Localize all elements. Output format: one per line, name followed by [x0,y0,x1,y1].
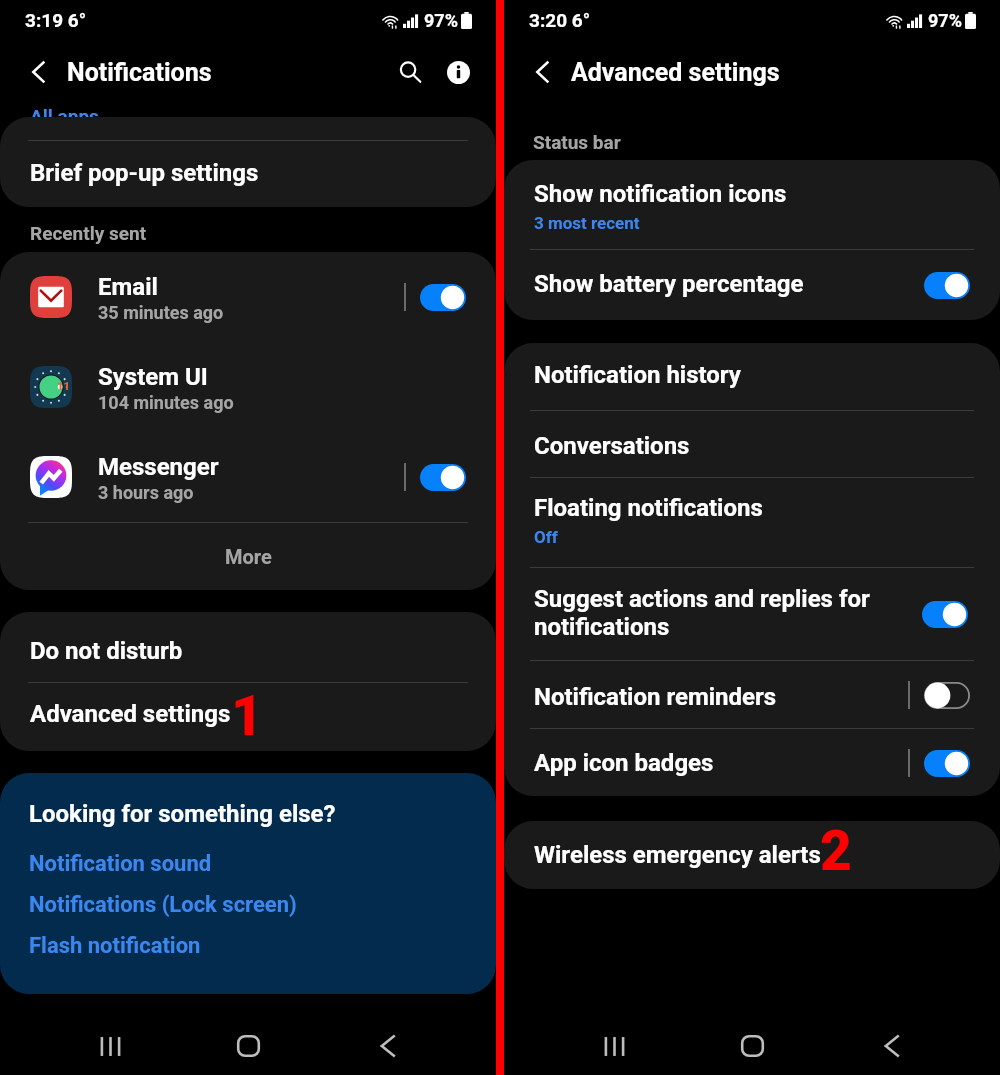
button[interactable]: 11 [0,342,496,432]
button[interactable]: Information [436,50,480,94]
button[interactable]: Recent apps [81,1017,139,1075]
staticText: Recently sent [30,222,147,244]
staticText: 97% [928,10,962,31]
staticText: Notification reminders [534,683,777,711]
button[interactable]: Switch off [924,682,970,709]
button[interactable]: Show battery percentage [504,250,1000,320]
button[interactable]: Show notification icons [504,160,1000,249]
staticText: Advanced settings [571,58,780,87]
button[interactable]: Home [723,1017,781,1075]
button[interactable]: Recent apps [585,1017,643,1075]
button[interactable]: Home [219,1017,277,1075]
button[interactable]: Wireless emergency alerts [504,821,1000,889]
staticText: Wireless emergency alerts [534,841,821,869]
staticText: Notification history [534,361,741,389]
staticText: 97% [424,10,458,31]
staticText: App icon badges [534,749,714,777]
staticText: 35 minutes ago [98,302,224,323]
staticText: Brief pop-up settings [30,159,259,187]
button[interactable]: Switch on [924,750,970,777]
button[interactable]: Switch on [420,464,466,491]
staticText: Email [98,273,158,301]
staticText: Messenger [98,453,219,481]
button[interactable]: Flash notification [0,933,201,959]
button[interactable]: Switch on [922,601,968,628]
staticText: Floating notifications [534,494,763,522]
staticText: Show notification icons [534,180,787,208]
staticText: Looking for something else? [29,800,336,828]
staticText: Off [534,527,558,547]
button[interactable]: Notifications (Lock screen) [0,892,297,918]
staticText: Show battery percentage [534,270,804,298]
staticText: 1 [231,684,263,748]
staticText: All apps [30,105,99,127]
staticText: Suggest actions and replies for notifica… [534,585,914,641]
button[interactable]: Back [358,1017,416,1075]
staticText: 3 hours ago [98,482,194,503]
button[interactable]: Suggest actions and replies for notifica… [504,568,1000,660]
button[interactable]: Floating notifications [504,478,1000,567]
staticText: 3 most recent [534,213,640,233]
staticText: 104 minutes ago [98,392,234,413]
button[interactable]: Navigate up [0,44,56,100]
button[interactable]: Notification sound [0,851,212,877]
button[interactable]: Navigate up [504,44,560,100]
button[interactable]: More [0,523,496,590]
staticText: 2 [820,821,852,883]
button[interactable]: Conversations [504,411,1000,477]
staticText: Do not disturb [30,637,183,665]
button[interactable]: Back [862,1017,920,1075]
staticText: 3:20 6° [529,9,591,31]
staticText: System UI [98,363,208,391]
staticText: 11 [57,380,70,393]
staticText: 3:19 6° [25,9,87,31]
button[interactable]: Notification history [504,343,1000,410]
button[interactable]: Email [0,252,496,342]
button[interactable]: Search [388,50,432,94]
button[interactable]: App icon badges [504,729,1000,796]
button[interactable]: Switch on [420,284,466,311]
button[interactable]: Messenger [0,432,496,522]
staticText: Notifications [67,58,212,87]
button[interactable]: Do not disturb [0,612,496,682]
button[interactable]: Advanced settings [0,683,496,751]
button[interactable]: Brief pop-up settings [0,141,496,207]
staticText: More [225,545,272,568]
button[interactable]: Notification reminders [504,661,1000,728]
button[interactable]: Switch on [924,272,970,299]
staticText: Advanced settings [30,700,231,728]
staticText: Conversations [534,432,690,460]
staticText: Status bar [533,131,621,153]
